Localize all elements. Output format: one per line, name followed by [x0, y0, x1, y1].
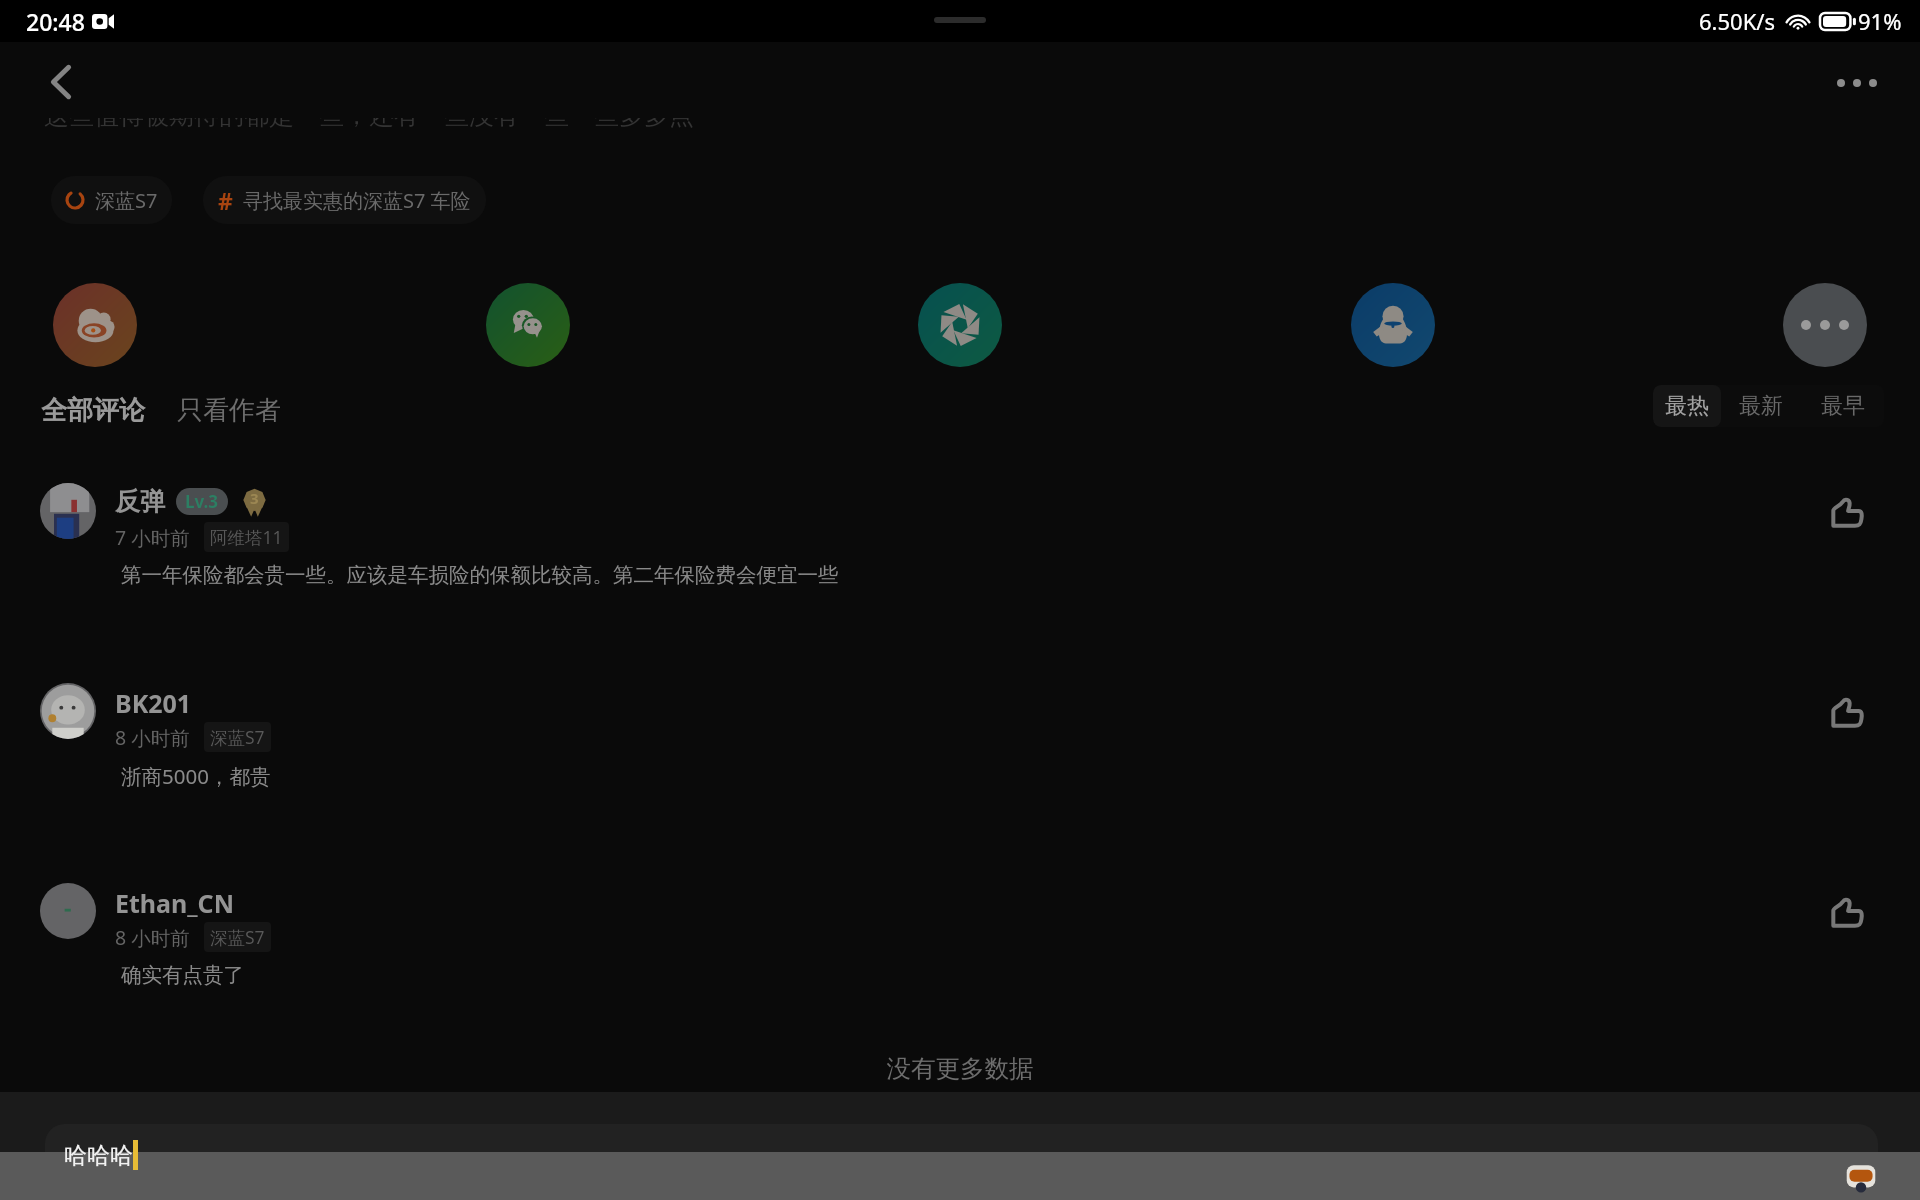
staticText: 91% — [1858, 6, 1902, 36]
staticText: 深蓝S7 — [210, 725, 265, 749]
button[interactable]: 全部评论 — [41, 394, 145, 427]
staticText: Ethan_CN — [115, 886, 234, 920]
button[interactable]: Like — [1822, 687, 1872, 737]
button[interactable]: Share to WeChat — [486, 283, 570, 367]
staticText: 最热 — [1665, 392, 1709, 420]
button[interactable]: Back — [36, 57, 86, 107]
button[interactable] — [0, 670, 1920, 850]
staticText: 阿维塔11 — [210, 525, 283, 549]
button[interactable]: Like — [1822, 487, 1872, 537]
button[interactable]: Ethan_CN — [115, 886, 234, 920]
staticText: 没有更多数据 — [0, 1053, 1920, 1084]
button[interactable]: Like — [1822, 887, 1872, 937]
button[interactable] — [0, 470, 1920, 650]
staticText: 反弹 — [115, 486, 165, 517]
button[interactable]: 深蓝S7 — [51, 176, 172, 224]
button[interactable]: BK201 — [115, 686, 192, 720]
staticText: 3 — [250, 488, 259, 508]
staticText: Lv.3 — [185, 490, 219, 513]
staticText: 深蓝S7 — [210, 925, 265, 949]
staticText: 哈哈哈 — [64, 1141, 133, 1170]
button[interactable]: Avatar — [40, 683, 96, 739]
staticText: 最早 — [1821, 392, 1865, 420]
staticText: 只看作者 — [177, 394, 281, 427]
staticText: 这些值得被期待的都是一些，还有一些没有一些一些多多点 — [44, 118, 704, 131]
staticText: 第一年保险都会贵一些。应该是车损险的保额比较高。第二年保险费会便宜一些 — [121, 562, 839, 588]
button[interactable]: Avatar — [40, 883, 96, 939]
staticText: 6.50K/s — [1699, 6, 1775, 36]
button[interactable]: More sharing options — [1783, 283, 1867, 367]
button[interactable] — [45, 1124, 1878, 1200]
button[interactable]: # — [203, 176, 486, 224]
button[interactable]: Share to QQ — [1351, 283, 1435, 367]
staticText: BK201 — [115, 686, 192, 720]
staticText: 深蓝S7 — [95, 187, 158, 214]
staticText: 寻找最实惠的深蓝S7 车险 — [243, 187, 471, 214]
button[interactable]: Avatar — [40, 483, 96, 539]
button[interactable]: 最热 — [1653, 385, 1721, 427]
staticText: 7 小时前 — [115, 524, 190, 551]
staticText: 最新 — [1739, 392, 1783, 420]
staticText: # — [218, 185, 233, 216]
staticText: 全部评论 — [41, 394, 145, 427]
button[interactable]: 最新 — [1721, 385, 1801, 427]
staticText: 确实有点贵了 — [121, 962, 244, 988]
button[interactable]: Share to Moments — [918, 283, 1002, 367]
button[interactable]: Share to Weibo — [53, 283, 137, 367]
staticText: 浙商5000，都贵 — [121, 762, 271, 790]
button[interactable]: 反弹 — [115, 486, 270, 517]
button[interactable] — [0, 870, 1920, 1050]
button[interactable]: More options — [1828, 58, 1886, 108]
staticText: 8 小时前 — [115, 724, 190, 751]
staticText: 8 小时前 — [115, 924, 190, 951]
staticText: 20:48 — [26, 6, 85, 37]
button[interactable]: 只看作者 — [177, 394, 281, 427]
button[interactable]: 最早 — [1801, 385, 1884, 427]
